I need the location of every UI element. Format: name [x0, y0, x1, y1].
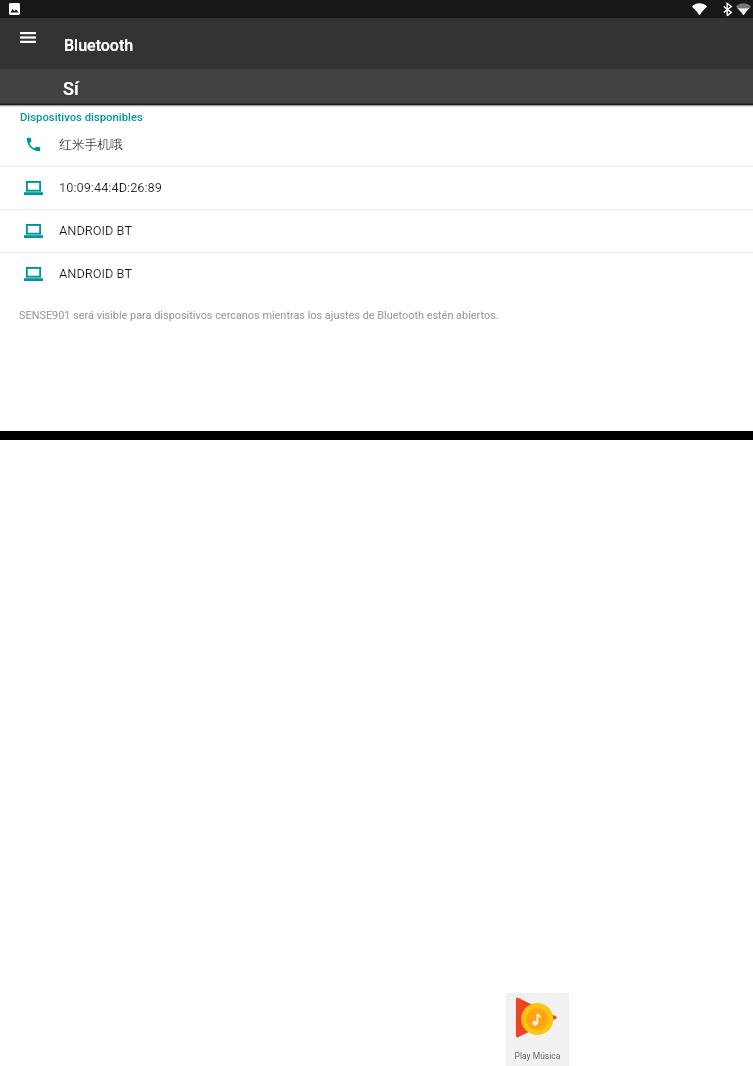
- staticText: 10:09:44:4D:26:89: [59, 180, 163, 195]
- button[interactable]: Open Play Música: [506, 993, 569, 1066]
- staticText: ANDROID BT: [59, 223, 133, 238]
- button[interactable]: 10:09:44:4D:26:89: [0, 166, 753, 209]
- button[interactable]: Sí: [0, 69, 753, 105]
- staticText: 红米手机哦: [59, 137, 123, 153]
- button[interactable]: 红米手机哦: [0, 123, 753, 166]
- button[interactable]: Open navigation drawer: [11, 21, 45, 53]
- staticText: SENSE901 será visible para dispositivos …: [19, 309, 539, 322]
- button[interactable]: ANDROID BT: [0, 209, 753, 252]
- staticText: ANDROID BT: [59, 266, 133, 281]
- staticText: Bluetooth: [64, 36, 134, 55]
- staticText: Sí: [63, 78, 79, 99]
- staticText: Play Música: [506, 1051, 569, 1061]
- button[interactable]: ANDROID BT: [0, 252, 753, 295]
- staticText: Dispositivos disponibles: [20, 111, 143, 124]
